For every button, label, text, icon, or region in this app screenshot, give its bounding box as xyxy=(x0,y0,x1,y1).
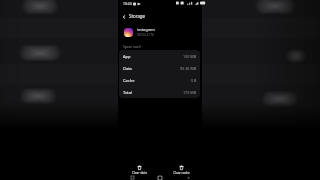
staticText: 300.0.0.4.7 M xyxy=(137,33,154,37)
staticText: Data xyxy=(123,66,132,71)
staticText: Clear data xyxy=(132,171,147,175)
button[interactable]: Data xyxy=(119,62,200,74)
staticText: 130 MB xyxy=(183,54,197,59)
button[interactable]: Total xyxy=(119,86,200,98)
button[interactable]: Back xyxy=(120,13,127,20)
button[interactable]: App xyxy=(119,50,200,62)
staticText: 10:24 xyxy=(123,1,132,6)
button[interactable]: instagram xyxy=(118,22,202,39)
staticText: 170 MB xyxy=(183,90,197,95)
button[interactable]: Clear data xyxy=(118,164,160,175)
button[interactable]: Recents xyxy=(118,175,146,180)
staticText: App xyxy=(123,54,131,59)
staticText: Total xyxy=(123,90,133,95)
staticText: Clear cache xyxy=(173,171,190,175)
staticText: 0 B xyxy=(191,78,197,83)
button[interactable]: Clear cache xyxy=(160,164,202,175)
button[interactable]: Cache xyxy=(119,74,200,86)
button[interactable]: Back xyxy=(174,175,202,180)
button[interactable]: Home xyxy=(146,175,174,180)
staticText: Storage xyxy=(129,13,146,19)
staticText: 93.30 MB xyxy=(180,66,197,71)
staticText: instagram xyxy=(137,27,155,32)
staticText: Space used xyxy=(123,44,141,48)
staticText: Cache xyxy=(123,78,135,83)
